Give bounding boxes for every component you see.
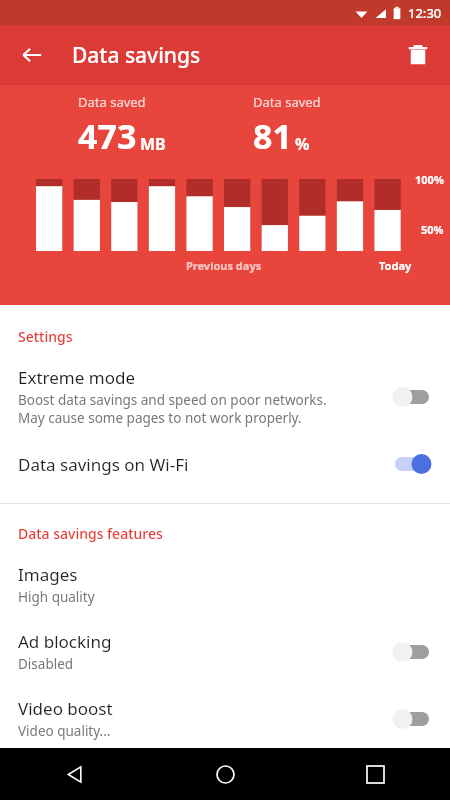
button[interactable]: Home — [150, 748, 300, 800]
button[interactable]: Delete — [394, 31, 442, 79]
staticText: Previous days — [186, 258, 262, 273]
staticText: Boost data savings and speed on poor net… — [18, 391, 327, 427]
staticText: High quality — [18, 588, 95, 606]
staticText: Extreme mode — [18, 366, 135, 389]
staticText: Video boost — [18, 697, 113, 720]
staticText: 50% — [421, 222, 444, 237]
staticText: MB — [140, 133, 166, 155]
staticText: Data saved — [253, 93, 321, 111]
staticText: Data savings features — [18, 524, 163, 543]
button[interactable] — [390, 706, 434, 732]
staticText: 81 — [253, 113, 292, 159]
staticText: % — [295, 133, 310, 155]
staticText: Ad blocking — [18, 630, 112, 653]
button[interactable]: Images — [0, 547, 450, 614]
button[interactable]: Back — [0, 748, 150, 800]
staticText: Settings — [18, 327, 73, 346]
staticText: 12:30 — [408, 4, 442, 22]
button[interactable] — [390, 384, 434, 410]
staticText: Data saved — [78, 93, 146, 111]
button[interactable] — [390, 639, 434, 665]
staticText: Images — [18, 563, 78, 586]
staticText: Video quality... — [18, 722, 111, 740]
button[interactable]: Data savings on Wi-Fi — [0, 435, 450, 485]
button[interactable]: Extreme mode — [0, 350, 450, 435]
button[interactable]: Ad blocking — [0, 614, 450, 681]
staticText: 473 — [78, 113, 137, 159]
button[interactable] — [390, 451, 434, 477]
staticText: Disabled — [18, 655, 74, 673]
staticText: Today — [379, 258, 412, 273]
staticText: Data savings on Wi-Fi — [18, 453, 189, 476]
button[interactable]: Recent apps — [300, 748, 450, 800]
button[interactable]: Video boost — [0, 681, 450, 748]
button[interactable]: Back — [8, 31, 56, 79]
staticText: 100% — [415, 172, 444, 187]
staticText: Data savings — [72, 41, 201, 70]
